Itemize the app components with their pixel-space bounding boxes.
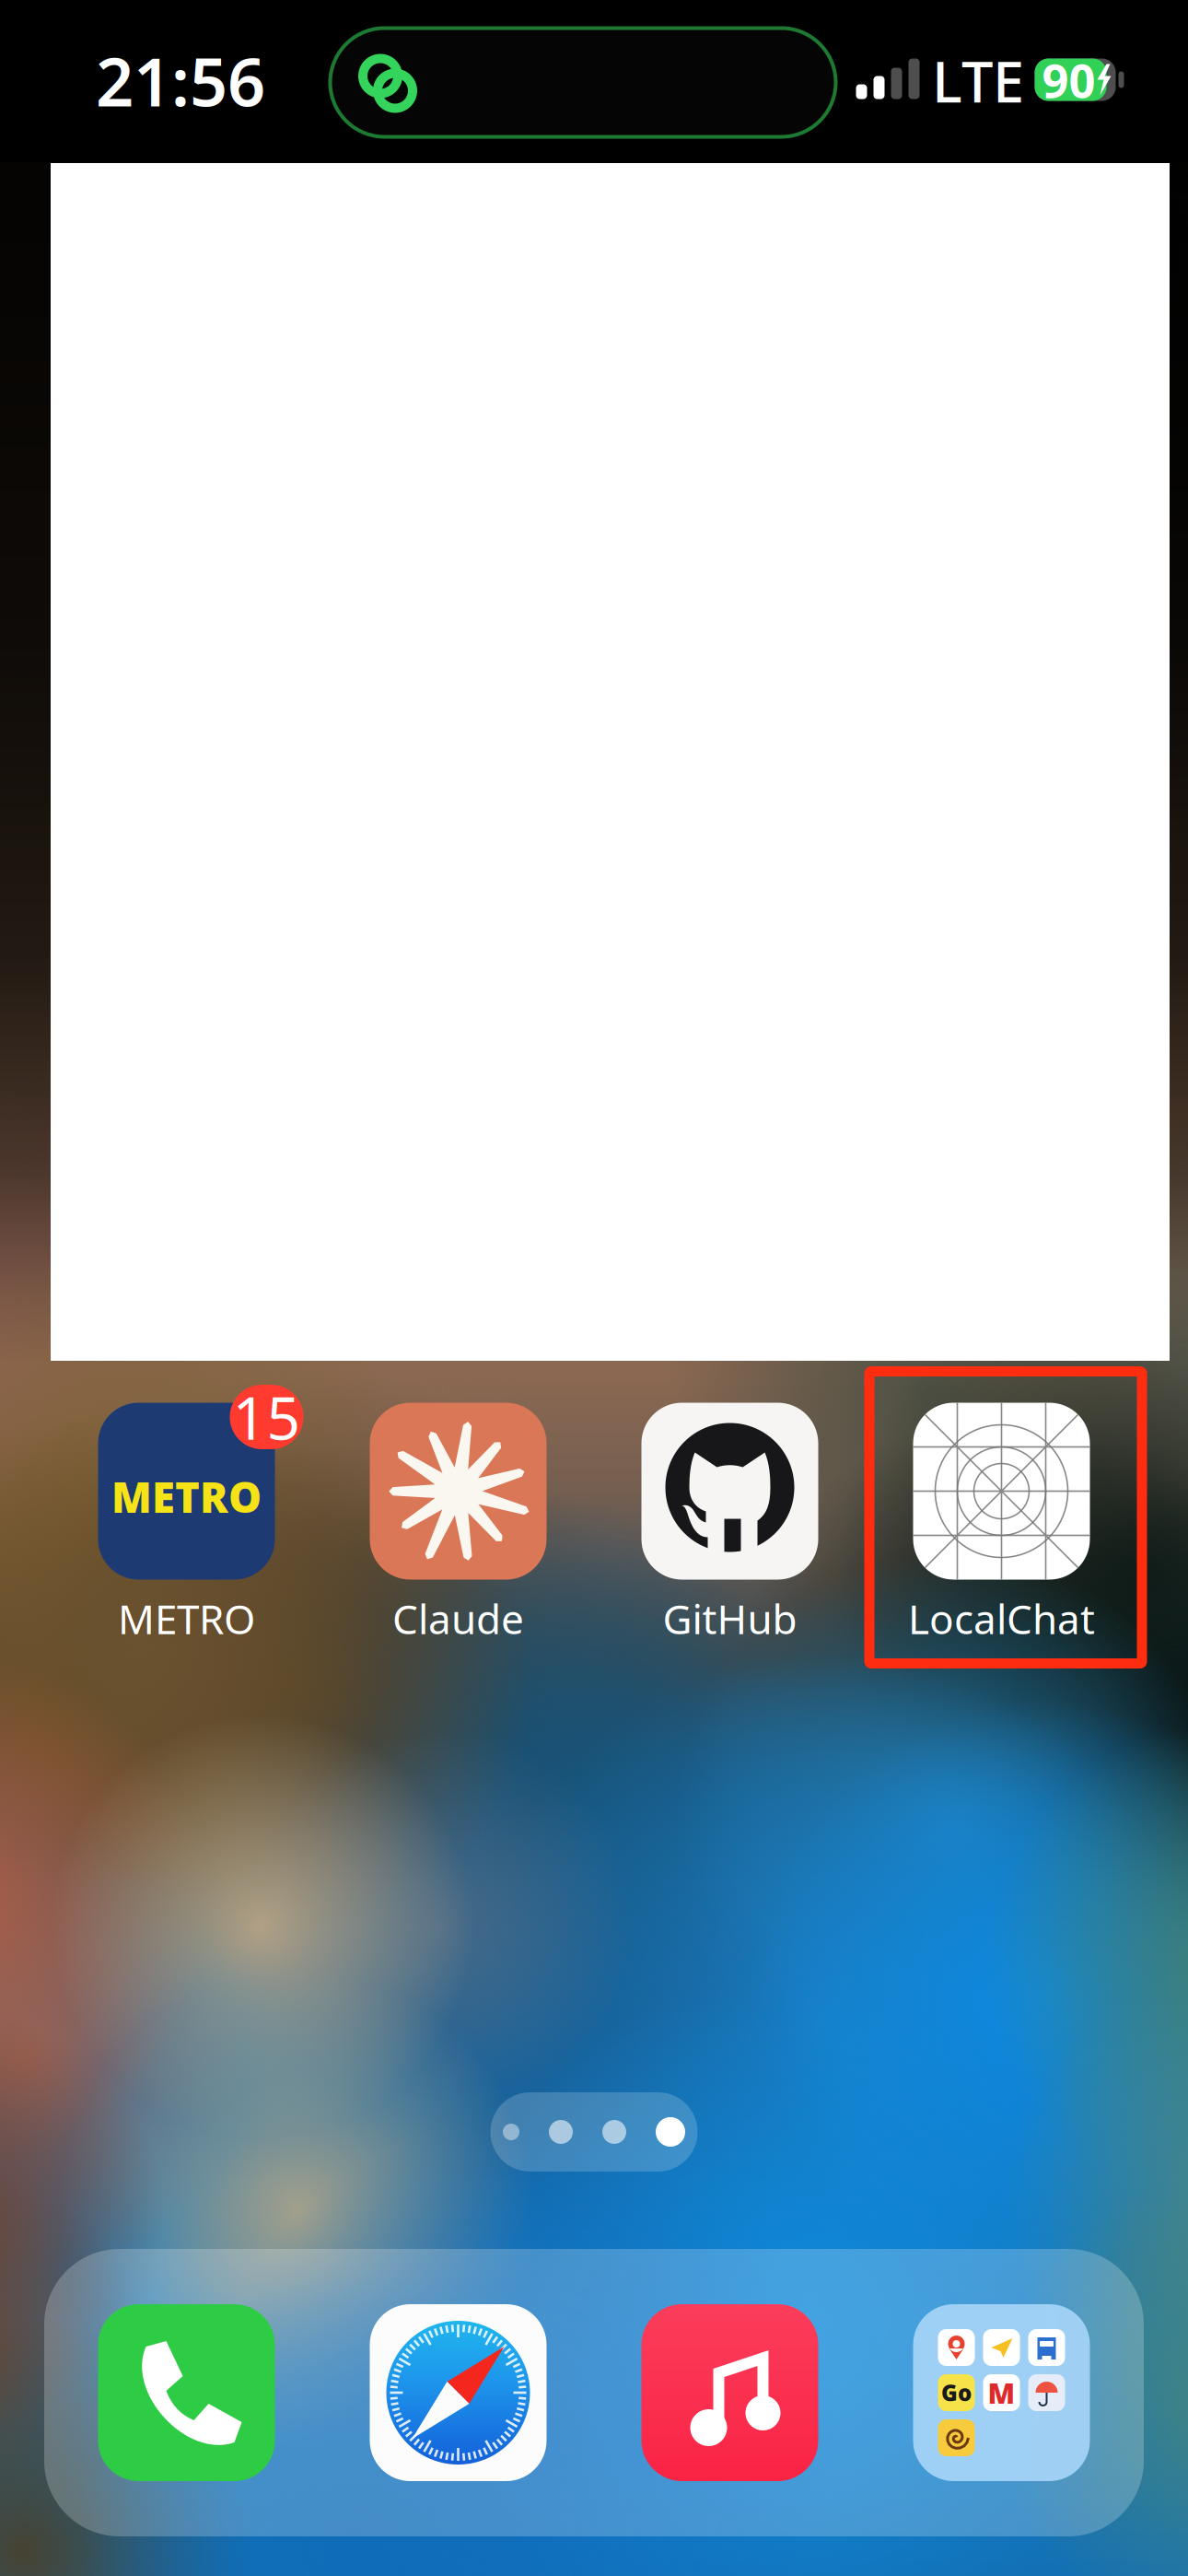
button[interactable]: LocalChat [913,1403,1090,1665]
staticText: METRO [118,1592,255,1645]
button[interactable]: METRO [98,1403,275,1665]
button[interactable]: GitHub [641,1403,818,1665]
staticText: LocalChat [908,1592,1095,1645]
button[interactable]: Music [641,2304,818,2481]
staticText: Claude [392,1592,524,1645]
staticText: LTE [932,43,1024,118]
staticText: METRO [111,1469,262,1524]
button[interactable]: Safari [370,2304,547,2481]
staticText: M [988,2374,1015,2411]
staticText: Go [941,2378,972,2407]
staticText: 15 [233,1378,301,1456]
staticText: 90 [1042,49,1095,111]
button[interactable]: Claude [370,1403,547,1665]
staticText: 21:56 [96,37,265,125]
button[interactable]: Phone [98,2304,275,2481]
button[interactable]: Folder [913,2304,1090,2481]
staticText: GitHub [663,1592,797,1645]
